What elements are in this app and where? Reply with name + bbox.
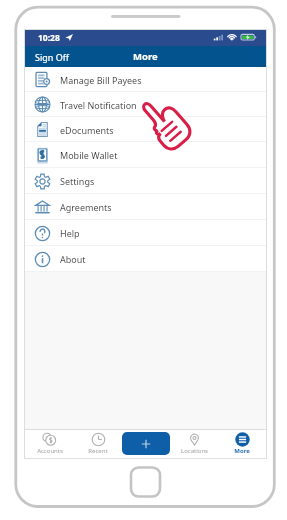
button[interactable]: Settings [25, 168, 266, 194]
staticText: Settings [60, 175, 95, 187]
staticText: Agreements [60, 201, 112, 213]
button[interactable]: Sign Off [25, 47, 79, 67]
staticText: More [234, 447, 250, 455]
button[interactable]: About [25, 246, 266, 272]
staticText: Sign Off [35, 51, 69, 63]
staticText: Travel Notification [60, 99, 137, 111]
staticText: 10:28 [38, 32, 60, 44]
staticText: Locations [181, 447, 208, 455]
button[interactable]: Mobile Wallet [25, 142, 266, 168]
staticText: Recent [88, 447, 108, 455]
staticText: More [133, 50, 158, 63]
button[interactable]: Agreements [25, 194, 266, 220]
button[interactable]: Help [25, 220, 266, 246]
staticText: Help [60, 227, 80, 239]
staticText: Manage Bill Payees [60, 74, 142, 86]
button[interactable]: Locations [170, 429, 218, 458]
button[interactable]: Manage Bill Payees [25, 67, 266, 92]
button[interactable]: Accounts [25, 429, 74, 458]
button[interactable]: Travel Notification [25, 92, 266, 117]
staticText: Mobile Wallet [60, 149, 118, 161]
button[interactable]: Recent [74, 429, 122, 458]
staticText: Accounts [37, 447, 63, 455]
staticText: About [60, 253, 86, 265]
button[interactable]: More [218, 429, 266, 458]
button[interactable]: eDocuments [25, 117, 266, 142]
button[interactable]: Add [122, 432, 170, 455]
staticText: eDocuments [60, 124, 114, 136]
